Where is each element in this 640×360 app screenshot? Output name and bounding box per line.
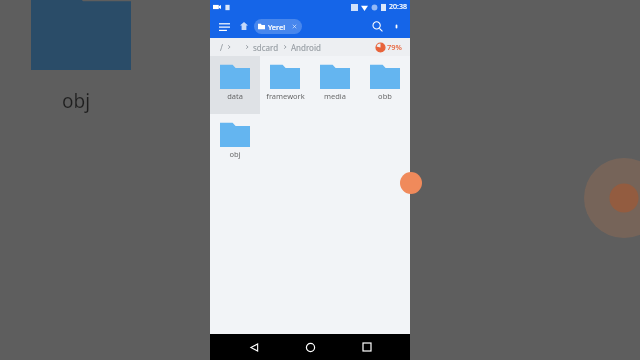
button[interactable]: Android [289,42,323,53]
staticText: obb [378,91,392,101]
button[interactable]: data [210,56,260,114]
button[interactable]: sdcard [251,42,281,53]
button[interactable]: Storage 79 percent [376,42,402,52]
staticText: Android [291,42,321,53]
staticText: 20:38 [389,2,407,12]
button[interactable]: Add [400,172,422,194]
staticText: obj [229,149,241,159]
button[interactable]: framework [260,56,310,114]
staticText: / [220,42,223,53]
staticText: data [227,91,243,101]
button[interactable]: Recents [354,334,380,360]
staticText: obj [62,88,91,114]
button[interactable]: Menu [216,18,232,34]
button[interactable]: media [310,56,360,114]
staticText: Yerel [268,22,286,32]
staticText: sdcard [253,42,279,53]
button[interactable]: Search [368,17,386,35]
button[interactable]: obj [210,114,260,172]
button[interactable]: More options [388,18,404,34]
button[interactable]: Home [238,20,250,32]
button[interactable]: obb [360,56,410,114]
button[interactable]: Home [297,334,323,360]
staticText: framework [266,91,305,101]
staticText: media [324,91,346,101]
staticText: 79% [387,42,402,52]
button[interactable]: Back [241,334,267,360]
button[interactable]: Yerel [254,19,302,34]
button[interactable]: / [218,42,225,53]
